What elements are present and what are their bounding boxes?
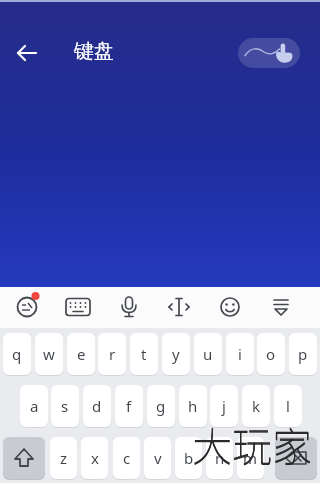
staticText: h [188, 396, 198, 416]
staticText: x [91, 448, 99, 468]
staticText: w [43, 344, 55, 364]
staticText: l [286, 396, 290, 416]
button[interactable]: v [144, 437, 171, 479]
button[interactable] [110, 288, 148, 326]
staticText: 大玩家 [192, 416, 312, 474]
staticText: u [203, 344, 213, 364]
button[interactable]: s [51, 385, 79, 427]
staticText: f [126, 396, 132, 416]
staticText: n [215, 448, 225, 468]
staticText: c [123, 448, 131, 468]
button[interactable]: z [50, 437, 77, 479]
button[interactable] [275, 437, 317, 479]
staticText: y [172, 344, 180, 364]
staticText: m [243, 448, 258, 468]
button[interactable] [3, 437, 45, 479]
staticText: s [61, 396, 69, 416]
button[interactable]: x [81, 437, 108, 479]
button[interactable]: w [35, 333, 63, 375]
button[interactable]: p [289, 333, 317, 375]
staticText: 大玩家 [192, 415, 312, 473]
button[interactable] [211, 288, 249, 326]
button[interactable]: c [113, 437, 140, 479]
staticText: v [154, 448, 162, 468]
button[interactable]: g [147, 385, 175, 427]
button[interactable]: k [242, 385, 270, 427]
button[interactable]: q [3, 333, 31, 375]
staticText: p [298, 344, 308, 364]
button[interactable]: e [67, 333, 95, 375]
staticText: d [92, 396, 102, 416]
button[interactable]: m [237, 437, 264, 479]
staticText: e [77, 344, 86, 364]
staticText: t [141, 344, 147, 364]
button[interactable]: b [175, 437, 202, 479]
button[interactable] [238, 38, 300, 68]
button[interactable]: u [194, 333, 222, 375]
button[interactable]: h [179, 385, 207, 427]
button[interactable] [262, 288, 300, 326]
staticText: 大玩家 [192, 416, 312, 474]
staticText: b [184, 448, 194, 468]
staticText: i [238, 344, 242, 364]
staticText: z [60, 448, 68, 468]
staticText: 键盘 [74, 39, 114, 64]
button[interactable]: o [257, 333, 285, 375]
staticText: g [156, 396, 166, 416]
staticText: q [12, 344, 22, 364]
button[interactable] [13, 39, 41, 67]
button[interactable]: n [206, 437, 233, 479]
button[interactable]: d [83, 385, 111, 427]
staticText: 大玩家 [192, 415, 312, 473]
button[interactable]: i [226, 333, 254, 375]
staticText: a [30, 396, 39, 416]
button[interactable] [160, 288, 198, 326]
staticText: k [252, 396, 261, 416]
staticText: r [109, 344, 116, 364]
button[interactable]: y [162, 333, 190, 375]
button[interactable]: f [115, 385, 143, 427]
staticText: o [266, 344, 276, 364]
button[interactable]: t [130, 333, 158, 375]
button[interactable]: a [20, 385, 48, 427]
button[interactable] [8, 288, 46, 326]
button[interactable]: l [274, 385, 302, 427]
button[interactable] [59, 288, 97, 326]
button[interactable]: r [98, 333, 126, 375]
staticText: j [222, 396, 226, 416]
button[interactable]: j [210, 385, 238, 427]
